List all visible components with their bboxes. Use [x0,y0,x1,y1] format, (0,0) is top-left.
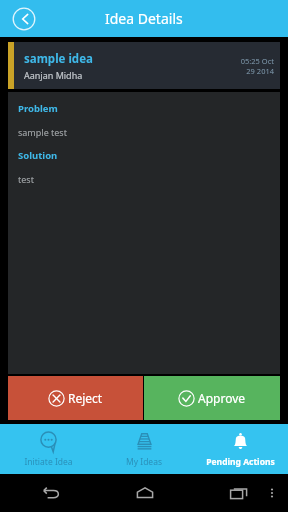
staticText: Solution [18,149,58,162]
staticText: sample test [18,126,67,138]
staticText: 05:25 Oct 29 2014 [240,56,274,76]
staticText: test [18,173,34,185]
staticText: Reject [68,390,103,406]
button[interactable]: Approve [144,376,280,420]
button[interactable]: My Ideas [96,424,192,474]
button[interactable]: Back [10,5,38,33]
button[interactable]: Recents [222,476,256,510]
button[interactable]: Initiate Idea [0,424,96,474]
staticText: Aanjan Midha [24,69,83,81]
staticText: Idea Details [105,9,183,28]
staticText: Problem [18,102,58,115]
button[interactable]: Home [128,476,162,510]
button[interactable]: More options [256,476,288,510]
button[interactable]: sample idea [8,42,280,89]
staticText: Approve [198,390,246,406]
staticText: My Ideas [126,456,162,468]
button[interactable]: Reject [8,376,143,420]
staticText: Pending Actions [206,456,275,468]
staticText: Initiate Idea [24,456,73,468]
button[interactable]: Back [34,476,68,510]
button[interactable]: Pending Actions [192,424,288,474]
staticText: sample idea [24,51,93,67]
